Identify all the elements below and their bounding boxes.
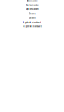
staticText: Chrome: [28, 17, 35, 19]
staticText: Ik gebruik standaard: [22, 25, 41, 28]
staticText: Mijn bestanden: [26, 0, 37, 2]
staticText: Chrome: [28, 12, 35, 15]
staticText: Ik gebruik standaard: [23, 21, 41, 23]
staticText: Mijn bestanden: [25, 4, 38, 6]
staticText: Mijn bestanden: [25, 8, 38, 10]
